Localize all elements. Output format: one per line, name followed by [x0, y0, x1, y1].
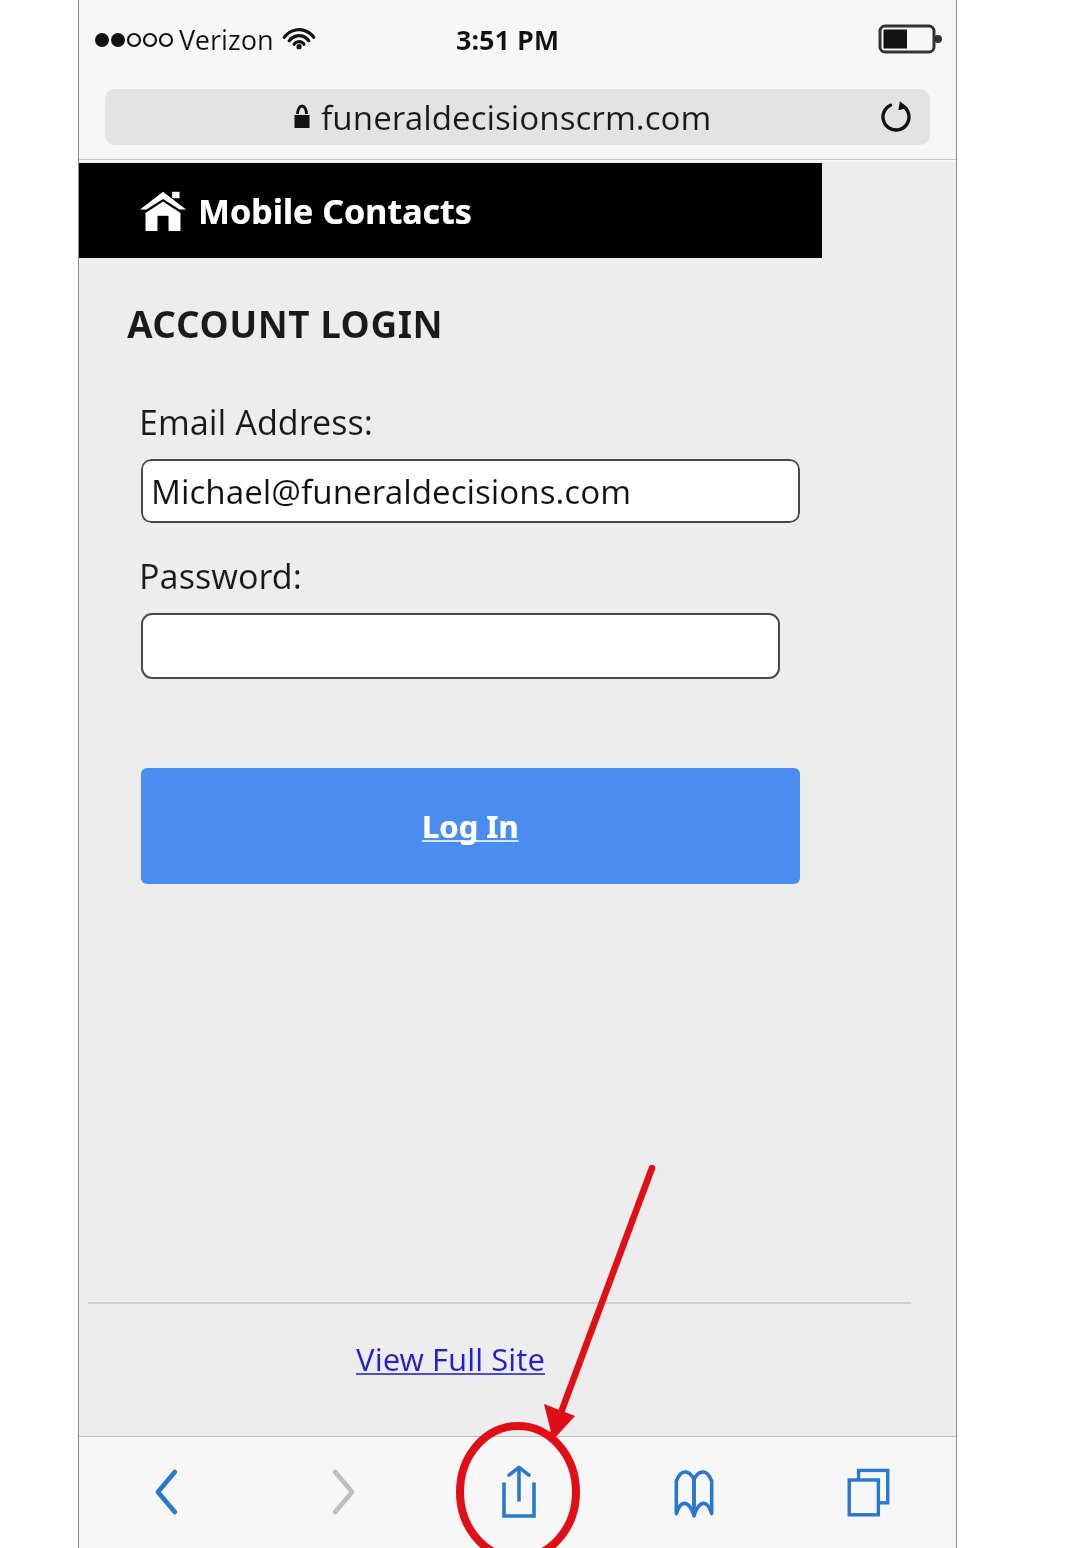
- staticText: Log In: [422, 805, 519, 847]
- staticText: View Full Site: [356, 1338, 545, 1380]
- button[interactable]: Reload: [872, 93, 920, 141]
- button[interactable]: Tabs: [781, 1436, 956, 1548]
- staticText: Password:: [139, 553, 302, 599]
- button[interactable]: Mobile Contacts: [79, 163, 822, 258]
- staticText: Michael@funeraldecisions.com: [151, 469, 631, 514]
- button[interactable]: Forward: [255, 1436, 431, 1548]
- button[interactable]: Log In: [141, 768, 800, 884]
- staticText: ACCOUNT LOGIN: [127, 298, 444, 348]
- staticText: Email Address:: [139, 399, 373, 445]
- staticText: funeraldecisionscrm.com: [321, 95, 712, 140]
- button[interactable]: Michael@funeraldecisions.com: [141, 459, 800, 523]
- button[interactable]: Back: [79, 1436, 255, 1548]
- button[interactable]: Bookmarks: [606, 1436, 781, 1548]
- button[interactable]: funeraldecisionscrm.com: [105, 89, 930, 145]
- button[interactable]: [141, 613, 780, 679]
- staticText: Verizon: [179, 21, 274, 58]
- button[interactable]: View Full Site: [350, 1334, 551, 1384]
- staticText: 3:51 PM: [456, 21, 560, 58]
- button[interactable]: Share: [431, 1436, 606, 1548]
- staticText: Mobile Contacts: [198, 188, 472, 234]
